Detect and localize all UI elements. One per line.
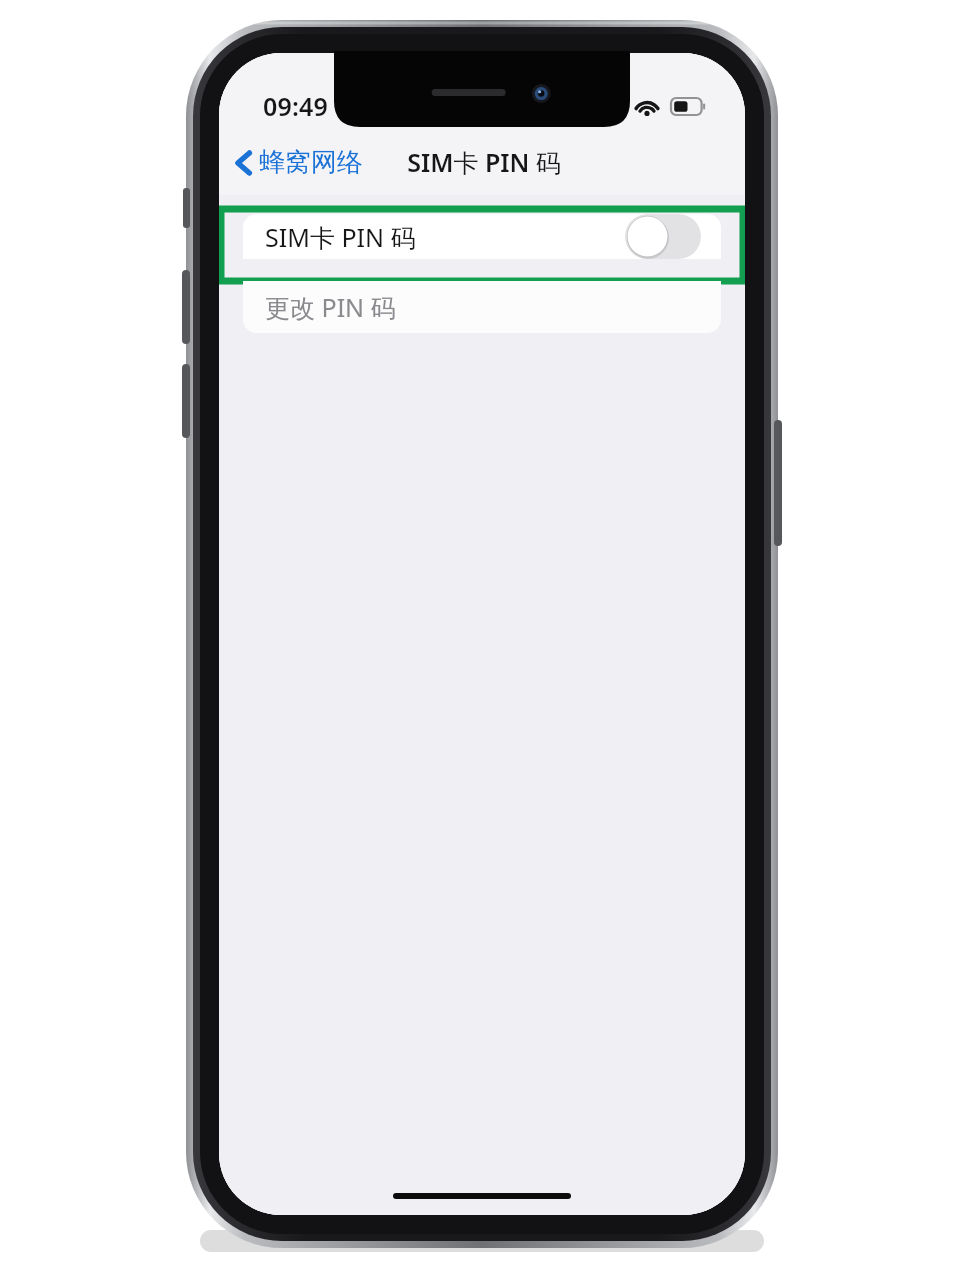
staticText: SIM卡 PIN 码 (265, 220, 416, 254)
button[interactable]: 蜂窝网络 (229, 140, 369, 185)
staticText: 09:49 (263, 89, 329, 123)
button[interactable]: SIM卡 PIN 码 (243, 214, 721, 259)
staticText: SIM卡 PIN 码 (407, 145, 561, 179)
button[interactable]: 更改 PIN 码 (243, 281, 721, 333)
staticText: 蜂窝网络 (259, 146, 363, 179)
button[interactable]: SIM 卡 PIN 码开关，已关闭 (625, 214, 701, 259)
staticText: 更改 PIN 码 (265, 290, 396, 324)
